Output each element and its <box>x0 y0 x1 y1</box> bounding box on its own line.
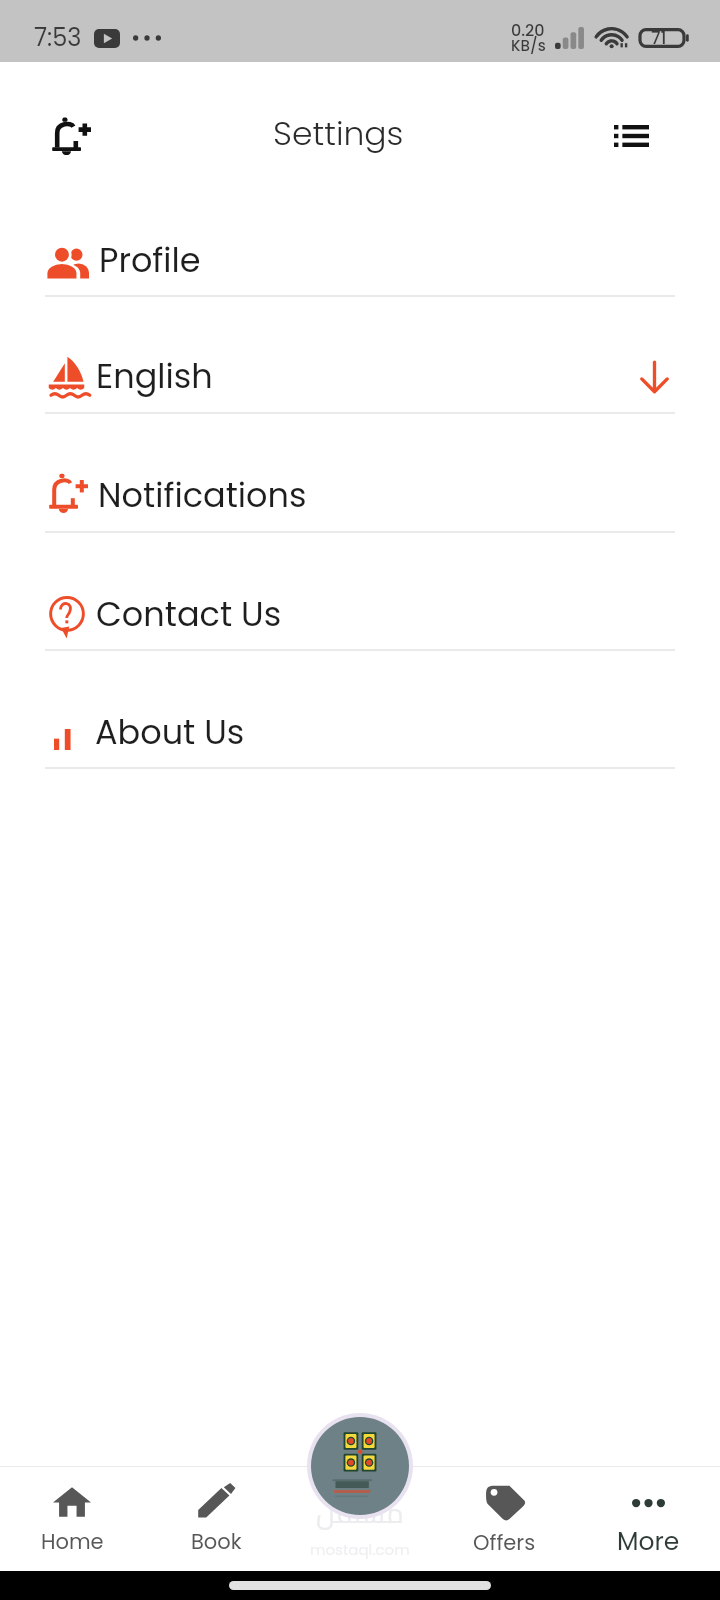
staticText: About Us <box>95 709 245 756</box>
button[interactable]: Contact Us <box>0 533 720 651</box>
button[interactable]: Book <box>144 1466 288 1571</box>
button[interactable]: Notifications <box>0 414 720 533</box>
button[interactable]: Offers <box>432 1466 576 1571</box>
staticText: mostaql.com <box>310 1539 410 1560</box>
button[interactable]: App logo <box>311 1417 409 1515</box>
button[interactable]: English <box>0 297 720 414</box>
staticText: 7:53 <box>34 21 82 55</box>
staticText: Profile <box>99 237 201 284</box>
staticText: More <box>617 1524 680 1559</box>
staticText: Contact Us <box>96 591 282 638</box>
button[interactable]: Menu <box>604 109 658 163</box>
button[interactable]: Add notification <box>36 102 106 172</box>
staticText: Settings <box>273 110 404 156</box>
button[interactable]: About Us <box>0 651 720 769</box>
staticText: 71 <box>651 26 667 50</box>
button[interactable]: Home <box>0 1466 144 1571</box>
staticText: KB/s <box>511 35 546 56</box>
staticText: English <box>96 353 213 400</box>
staticText: 0.20 <box>511 19 545 41</box>
staticText: Book <box>191 1527 242 1556</box>
staticText: Notifications <box>98 472 307 519</box>
button[interactable]: More <box>576 1466 720 1571</box>
staticText: Home <box>41 1527 104 1556</box>
button[interactable]: Profile <box>0 179 720 297</box>
staticText: مستقل <box>316 1487 404 1539</box>
staticText: Offers <box>473 1528 536 1557</box>
